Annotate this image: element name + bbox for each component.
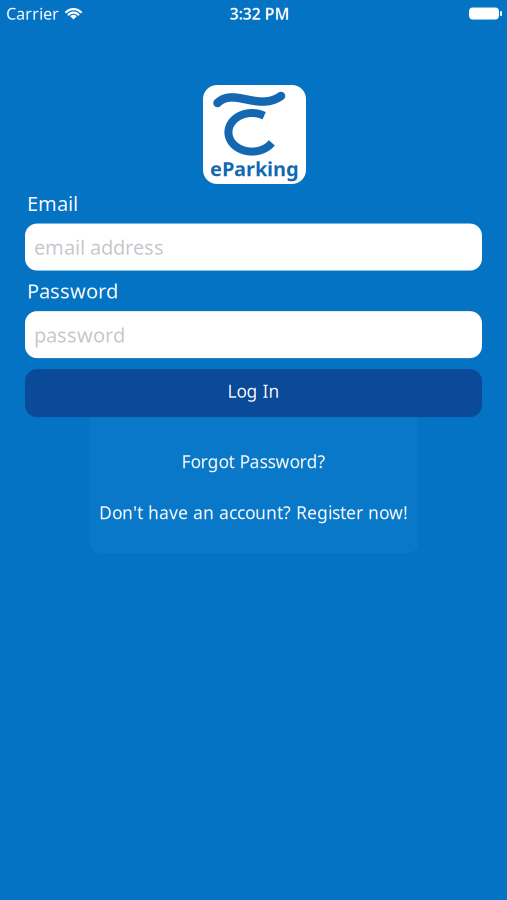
staticText: password [34,321,125,348]
button[interactable]: Forgot Password? [181,450,325,473]
staticText: Password [27,278,118,304]
staticText: Email [27,190,78,217]
staticText: Carrier [6,3,59,24]
staticText: Don't have an account? Register now! [99,501,408,524]
staticText: Forgot Password? [181,450,325,473]
button[interactable]: password [25,311,482,358]
button[interactable]: Don't have an account? Register now! [99,501,408,524]
staticText: Log In [227,380,279,403]
staticText: email address [34,234,164,260]
staticText: 3:32 PM [229,3,289,24]
staticText: eParking [210,155,299,182]
button[interactable]: Log In [25,369,482,417]
button[interactable]: email address [25,224,482,271]
